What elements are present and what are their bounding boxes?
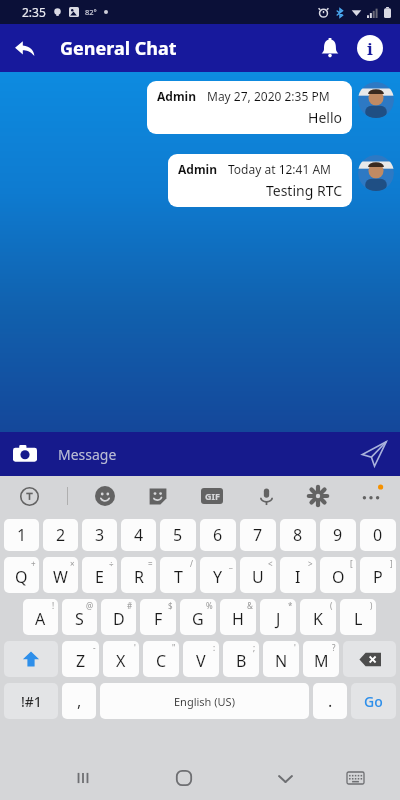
button[interactable]: GIF bbox=[196, 480, 228, 512]
button[interactable]: !#1 bbox=[4, 683, 58, 719]
button[interactable]: 1 bbox=[4, 519, 39, 551]
button[interactable]: . bbox=[313, 683, 347, 719]
button[interactable]: Text mode bbox=[14, 481, 44, 511]
button[interactable]: Switch keyboard bbox=[335, 758, 375, 798]
button[interactable]: ( bbox=[300, 599, 336, 635]
button[interactable]: × bbox=[43, 557, 78, 593]
staticText: 3 bbox=[95, 524, 105, 546]
button[interactable]: Back bbox=[0, 24, 48, 72]
button[interactable]: Voice input bbox=[251, 481, 281, 511]
button[interactable]: " bbox=[143, 641, 179, 677]
staticText: Hello bbox=[157, 108, 342, 127]
staticText: U bbox=[252, 566, 264, 588]
staticText: N bbox=[275, 650, 288, 672]
staticText: B bbox=[236, 650, 247, 672]
staticText: J bbox=[276, 608, 281, 630]
button[interactable]: Recent apps bbox=[63, 758, 103, 798]
button[interactable]: / bbox=[160, 557, 196, 593]
staticText: Today at 12:41 AM bbox=[228, 161, 331, 177]
button[interactable]: - bbox=[62, 641, 99, 677]
button[interactable]: , bbox=[62, 683, 96, 719]
staticText: May 27, 2020 2:35 PM bbox=[207, 88, 330, 104]
button[interactable]: 6 bbox=[200, 519, 236, 551]
button[interactable]: English (US) bbox=[100, 683, 309, 719]
button[interactable]: ' bbox=[263, 641, 299, 677]
staticText: ? bbox=[332, 642, 336, 653]
staticText: I bbox=[295, 566, 301, 588]
button[interactable]: = bbox=[121, 557, 156, 593]
button[interactable]: ? bbox=[303, 641, 339, 677]
staticText: ! bbox=[52, 600, 55, 611]
button[interactable]: Keyboard settings bbox=[303, 481, 333, 511]
button[interactable]: 4 bbox=[121, 519, 156, 551]
button[interactable]: ' bbox=[103, 641, 139, 677]
staticText: Testing RTC bbox=[178, 181, 342, 200]
staticText: !#1 bbox=[21, 692, 42, 711]
button[interactable] bbox=[4, 641, 58, 677]
button[interactable]: * bbox=[260, 599, 296, 635]
button[interactable]: Stickers bbox=[143, 481, 173, 511]
button[interactable]: ÷ bbox=[82, 557, 117, 593]
staticText: & bbox=[247, 600, 253, 611]
button[interactable]: Emoji bbox=[90, 481, 120, 511]
button[interactable]: Avatar bbox=[358, 155, 394, 191]
staticText: Admin bbox=[178, 161, 217, 177]
button[interactable]: 3 bbox=[82, 519, 117, 551]
button[interactable]: 5 bbox=[160, 519, 196, 551]
button[interactable]: Home bbox=[164, 758, 204, 798]
button[interactable]: More options bbox=[356, 481, 386, 511]
staticText: 5 bbox=[173, 524, 183, 546]
staticText: / bbox=[190, 558, 193, 569]
staticText: Admin bbox=[157, 88, 196, 104]
button[interactable]: < bbox=[240, 557, 276, 593]
staticText: 6 bbox=[213, 524, 223, 546]
button[interactable]: 0 bbox=[360, 519, 396, 551]
button[interactable]: @ bbox=[62, 599, 97, 635]
button[interactable]: _ bbox=[200, 557, 236, 593]
staticText: < bbox=[268, 558, 273, 569]
staticText: 2:35 bbox=[22, 4, 46, 20]
button[interactable]: & bbox=[220, 599, 256, 635]
button[interactable]: + bbox=[4, 557, 39, 593]
button[interactable]: 8 bbox=[280, 519, 316, 551]
staticText: i bbox=[367, 37, 373, 60]
staticText: @ bbox=[86, 600, 94, 611]
staticText: 8 bbox=[293, 524, 303, 546]
staticText: * bbox=[288, 600, 293, 611]
button[interactable]: ! bbox=[23, 599, 58, 635]
button[interactable]: [ bbox=[320, 557, 356, 593]
button[interactable]: Admin bbox=[168, 154, 352, 207]
staticText: Y bbox=[213, 566, 223, 588]
staticText: V bbox=[196, 650, 206, 672]
button[interactable]: Avatar bbox=[358, 82, 394, 118]
staticText: ÷ bbox=[109, 558, 114, 569]
button[interactable]: ] bbox=[360, 557, 396, 593]
button[interactable]: 9 bbox=[320, 519, 356, 551]
button[interactable]: > bbox=[280, 557, 316, 593]
staticText: Q bbox=[15, 566, 28, 588]
button[interactable]: Send bbox=[354, 434, 394, 474]
staticText: T bbox=[174, 566, 183, 588]
staticText: Go bbox=[364, 692, 383, 711]
staticText: " bbox=[172, 642, 176, 653]
button[interactable] bbox=[343, 641, 396, 677]
button[interactable]: Admin bbox=[147, 81, 352, 134]
button[interactable]: 2 bbox=[43, 519, 78, 551]
button[interactable]: ; bbox=[223, 641, 259, 677]
button[interactable]: # bbox=[101, 599, 136, 635]
staticText: # bbox=[127, 600, 133, 611]
button[interactable]: $ bbox=[140, 599, 176, 635]
staticText: English (US) bbox=[174, 694, 235, 709]
staticText: = bbox=[148, 558, 153, 569]
button[interactable]: 7 bbox=[240, 519, 276, 551]
button[interactable]: Hide keyboard bbox=[265, 758, 305, 798]
staticText: , bbox=[77, 690, 82, 712]
button[interactable]: % bbox=[180, 599, 216, 635]
staticText: + bbox=[31, 558, 36, 569]
button[interactable]: Info bbox=[350, 28, 390, 68]
button[interactable]: ) bbox=[340, 599, 376, 635]
button[interactable]: Notifications bbox=[310, 28, 350, 68]
button[interactable]: : bbox=[183, 641, 219, 677]
button[interactable]: Go bbox=[351, 683, 396, 719]
button[interactable]: Camera bbox=[6, 435, 44, 473]
